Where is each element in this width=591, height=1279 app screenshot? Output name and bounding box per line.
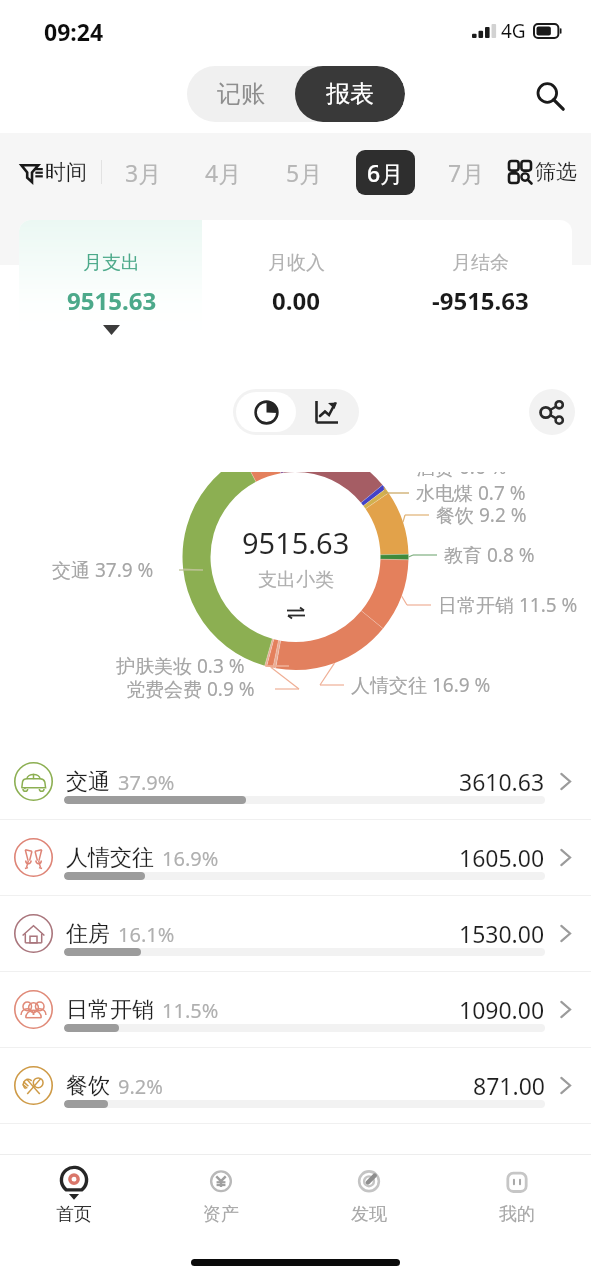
button[interactable]: 时间 — [20, 159, 87, 185]
staticText: 0.00 — [272, 284, 320, 317]
staticText: 9515.63 — [242, 523, 350, 562]
button[interactable]: 我的 — [443, 1155, 591, 1237]
staticText: 筛选 — [535, 159, 577, 185]
staticText: 报表 — [326, 79, 374, 109]
staticText: 月支出 — [83, 251, 140, 275]
staticText: 37.9% — [118, 769, 175, 796]
staticText: 7月 — [448, 157, 485, 188]
button[interactable]: 7月 — [437, 150, 496, 195]
staticText: 时间 — [45, 159, 87, 185]
staticText: 1090.00 — [459, 994, 545, 1025]
staticText: 资产 — [203, 1203, 239, 1226]
staticText: 1605.00 — [459, 842, 545, 873]
staticText: 交通 37.9 % — [52, 557, 154, 583]
staticText: 餐饮 — [66, 1072, 110, 1100]
button[interactable]: 5月 — [275, 150, 334, 195]
button[interactable]: 6月 — [356, 150, 415, 195]
staticText: 餐饮 9.2 % — [436, 502, 527, 528]
staticText: 月结余 — [452, 251, 509, 275]
staticText: 3月 — [125, 157, 162, 188]
button[interactable]: Share — [529, 389, 575, 435]
button[interactable]: 4月 — [194, 150, 253, 195]
staticText: 水电煤 0.7 % — [416, 480, 526, 506]
button[interactable]: 发现 — [295, 1155, 443, 1237]
staticText: 首页 — [56, 1203, 92, 1226]
staticText: 护肤美妆 0.3 % — [116, 653, 245, 679]
staticText: 16.9% — [162, 845, 219, 872]
staticText: 住房 — [66, 920, 110, 948]
staticText: 11.5% — [162, 997, 219, 1024]
staticText: 16.1% — [118, 921, 175, 948]
staticText: 教育 0.8 % — [444, 542, 535, 568]
button[interactable]: 日常开销 — [0, 972, 591, 1047]
staticText: 月收入 — [268, 251, 325, 275]
button[interactable]: 首页 — [0, 1155, 147, 1237]
staticText: 日常开销 — [66, 996, 154, 1024]
button[interactable]: 交通 — [0, 744, 591, 819]
staticText: 人情交往 16.9 % — [351, 672, 491, 698]
staticText: 6月 — [367, 157, 404, 188]
button[interactable]: 餐饮 — [0, 1048, 591, 1123]
button[interactable]: Pie chart — [236, 392, 296, 432]
button[interactable]: 人情交往 — [0, 820, 591, 895]
button[interactable]: 住房 — [0, 896, 591, 971]
button[interactable]: 月结余 — [388, 251, 572, 317]
staticText: 5月 — [286, 157, 323, 188]
button[interactable]: 3月 — [114, 150, 173, 195]
staticText: 1530.00 — [459, 918, 545, 949]
button[interactable]: Line chart — [296, 392, 356, 432]
button[interactable]: 报表 — [295, 66, 405, 122]
staticText: 871.00 — [473, 1070, 545, 1101]
staticText: 4G — [501, 18, 526, 44]
staticText: 9.2% — [118, 1073, 163, 1100]
button[interactable]: 资产 — [147, 1155, 295, 1237]
staticText: -9515.63 — [432, 284, 529, 317]
button[interactable]: 筛选 — [508, 159, 577, 185]
staticText: 记账 — [217, 79, 265, 109]
staticText: 9515.63 — [67, 284, 157, 317]
button[interactable]: Search — [527, 73, 573, 119]
staticText: 人情交往 — [66, 844, 154, 872]
staticText: 日常开销 11.5 % — [438, 592, 578, 618]
button[interactable]: 月收入 — [204, 251, 388, 317]
button[interactable]: 记账 — [187, 66, 295, 122]
staticText: 酒贺 0.6 % — [416, 472, 507, 480]
staticText: 发现 — [351, 1203, 387, 1226]
button[interactable]: 月支出 — [19, 251, 204, 335]
staticText: 交通 — [66, 768, 110, 796]
staticText: 支出小类 — [258, 568, 334, 592]
staticText: 09:24 — [44, 16, 104, 47]
staticText: 3610.63 — [459, 766, 545, 797]
staticText: 我的 — [499, 1203, 535, 1226]
staticText: 4月 — [205, 157, 242, 188]
staticText: 党费会费 0.9 % — [126, 676, 255, 702]
